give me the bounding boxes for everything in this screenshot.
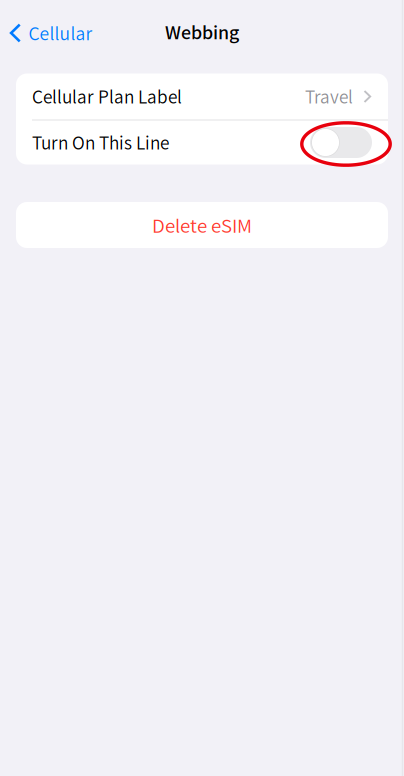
staticText: Travel	[305, 84, 353, 109]
staticText: Webbing	[165, 19, 239, 45]
button[interactable]: Cellular Plan Label	[16, 73, 388, 119]
button[interactable]: Delete eSIM	[16, 202, 388, 248]
staticText: Cellular Plan Label	[32, 84, 182, 109]
staticText: Turn On This Line	[32, 130, 169, 155]
staticText: Cellular	[28, 20, 92, 46]
button[interactable]: Turn On This Line	[310, 127, 372, 158]
staticText: Delete eSIM	[152, 211, 252, 239]
button[interactable]: Cellular	[1, 12, 100, 54]
